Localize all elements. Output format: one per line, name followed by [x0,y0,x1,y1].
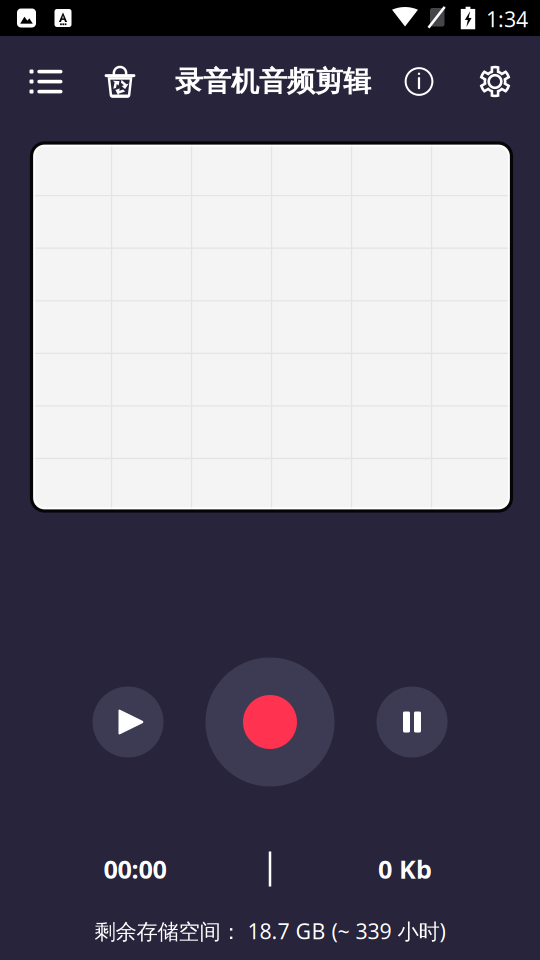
staticText: 录音机音频剪辑 [175,64,371,99]
button[interactable]: Recordings list [17,52,75,110]
staticText: 00:00 [103,852,166,886]
button[interactable]: Play [92,686,163,757]
staticText: 0 Kb [378,852,432,886]
staticText: 1:34 [486,5,528,33]
button[interactable]: Delete recordings [91,52,149,110]
button[interactable]: Record [205,657,334,786]
staticText: 剩余存储空间： 18.7 GB (~ 339 小时) [94,917,445,945]
button[interactable]: Settings [466,52,524,110]
button[interactable]: Pause [376,686,447,757]
button[interactable]: Information [390,52,448,110]
